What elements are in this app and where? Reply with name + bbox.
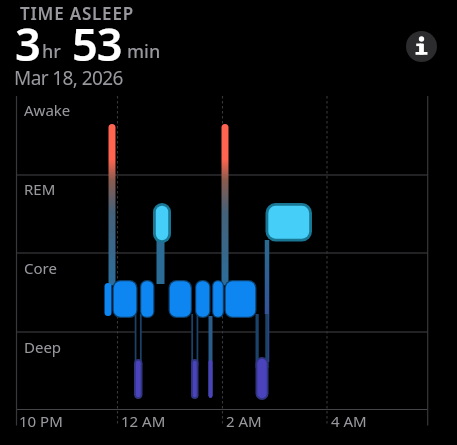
staticText: 4 AM	[331, 411, 367, 431]
staticText: Deep	[24, 337, 62, 357]
staticText: Awake	[24, 100, 71, 120]
button[interactable]	[406, 31, 437, 62]
staticText: 10 PM	[19, 411, 63, 431]
staticText: 53	[72, 13, 122, 74]
staticText: Core	[24, 258, 57, 278]
staticText: REM	[24, 179, 56, 199]
staticText: 2 AM	[226, 411, 262, 431]
staticText: Mar 18, 2026	[14, 65, 123, 91]
staticText: 12 AM	[121, 411, 166, 431]
staticText: hr	[42, 39, 61, 64]
staticText: min	[127, 39, 161, 64]
staticText: TIME ASLEEP	[20, 2, 134, 25]
staticText: 3	[15, 13, 41, 74]
